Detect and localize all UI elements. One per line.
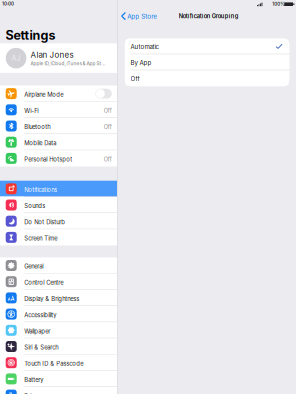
button[interactable]: Personal Hotspot bbox=[0, 150, 117, 166]
button[interactable]: Automatic bbox=[125, 38, 289, 54]
button[interactable]: By App bbox=[125, 54, 289, 70]
button[interactable]: General bbox=[0, 257, 117, 274]
button[interactable]: Accessibility bbox=[0, 306, 117, 322]
staticText: Airplane Mode bbox=[24, 91, 63, 98]
staticText: Off bbox=[104, 124, 112, 130]
staticText: Apple ID, iCloud, iTunes & App St… bbox=[31, 61, 106, 66]
staticText: Accessibility bbox=[24, 311, 56, 319]
staticText: Wallpaper bbox=[24, 328, 50, 335]
button[interactable]: Airplane Mode bbox=[0, 85, 117, 102]
staticText: General bbox=[24, 263, 43, 270]
staticText: Touch ID & Passcode bbox=[24, 360, 83, 367]
button[interactable]: Mobile Data bbox=[0, 134, 117, 150]
staticText: Screen Time bbox=[24, 235, 57, 242]
staticText: Do Not Disturb bbox=[24, 219, 65, 226]
staticText: Battery bbox=[24, 376, 43, 383]
staticText: By App bbox=[130, 59, 151, 66]
staticText: Sounds bbox=[24, 202, 45, 209]
button[interactable]: Sounds bbox=[0, 197, 117, 213]
button[interactable]: Bluetooth bbox=[0, 118, 117, 134]
staticText: Alan Jones bbox=[31, 50, 74, 60]
button[interactable]: Control Centre bbox=[0, 274, 117, 290]
staticText: Automatic bbox=[130, 43, 159, 50]
button[interactable]: Do Not Disturb bbox=[0, 213, 117, 229]
staticText: Privacy bbox=[24, 392, 43, 394]
staticText: Off bbox=[104, 156, 112, 163]
staticText: Notifications bbox=[24, 186, 57, 193]
staticText: Display & Brightness bbox=[24, 295, 79, 302]
staticText: 10:00 bbox=[2, 1, 14, 7]
button[interactable]: Wallpaper bbox=[0, 322, 117, 338]
staticText: AJ bbox=[12, 54, 21, 62]
staticText: Siri & Search bbox=[24, 344, 58, 351]
staticText: Off bbox=[130, 75, 139, 82]
button[interactable]: App Store bbox=[118, 9, 161, 23]
staticText: App Store bbox=[127, 13, 157, 20]
staticText: Wi-Fi bbox=[24, 107, 38, 114]
staticText: Notification Grouping bbox=[179, 13, 239, 19]
staticText: 100% bbox=[272, 1, 285, 7]
button[interactable]: Notifications bbox=[0, 181, 117, 197]
button[interactable]: Off bbox=[125, 70, 289, 86]
staticText: Mobile Data bbox=[24, 140, 56, 147]
staticText: Personal Hotspot bbox=[24, 156, 72, 163]
button[interactable]: AJ bbox=[0, 43, 117, 73]
button[interactable]: Touch ID & Passcode bbox=[0, 355, 117, 371]
button[interactable]: Siri & Search bbox=[0, 338, 117, 355]
staticText: Control Centre bbox=[24, 279, 63, 286]
button[interactable]: Battery bbox=[0, 371, 117, 387]
button[interactable]: Wi-Fi bbox=[0, 102, 117, 118]
staticText: Bluetooth bbox=[24, 123, 50, 130]
button[interactable]: Screen Time bbox=[0, 229, 117, 245]
button[interactable]: Privacy bbox=[0, 387, 117, 394]
staticText: Off bbox=[104, 107, 112, 114]
staticText: Settings bbox=[6, 28, 56, 43]
button[interactable]: Display & Brightness bbox=[0, 290, 117, 306]
